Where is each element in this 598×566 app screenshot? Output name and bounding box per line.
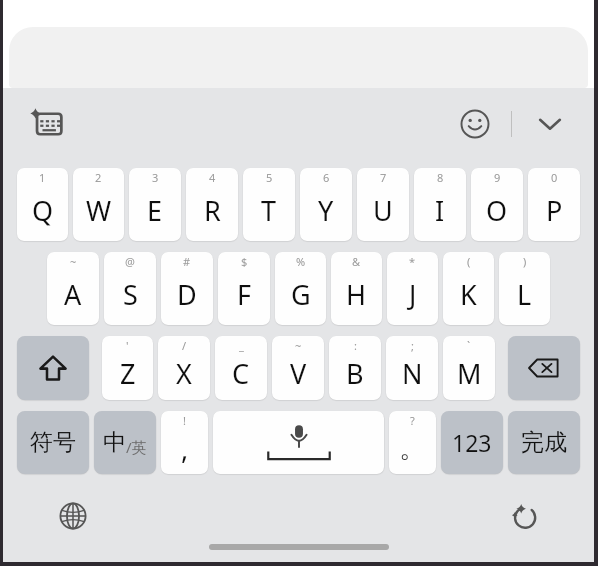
- staticText: H: [346, 276, 367, 313]
- button[interactable]: 2: [73, 168, 124, 241]
- button[interactable]: #: [161, 252, 213, 325]
- button[interactable]: @: [104, 252, 156, 325]
- staticText: *: [409, 254, 416, 269]
- staticText: ?: [410, 413, 415, 428]
- staticText: Z: [120, 355, 136, 392]
- staticText: I: [435, 192, 445, 229]
- staticText: ': [126, 338, 129, 353]
- button[interactable]: 6: [300, 168, 352, 241]
- button[interactable]: 9: [471, 168, 523, 241]
- staticText: !: [183, 413, 186, 428]
- staticText: #: [183, 254, 191, 269]
- button[interactable]: %: [275, 252, 326, 325]
- staticText: B: [346, 355, 364, 392]
- button[interactable]: Emoji: [453, 102, 497, 146]
- staticText: /: [182, 338, 187, 353]
- staticText: %: [296, 254, 306, 269]
- button[interactable]: _: [215, 336, 267, 400]
- staticText: W: [86, 192, 112, 229]
- staticText: :: [354, 338, 357, 353]
- staticText: ,: [181, 430, 189, 467]
- button[interactable]: :: [329, 336, 381, 400]
- button[interactable]: $: [218, 252, 270, 325]
- staticText: C: [232, 355, 250, 392]
- staticText: 4: [209, 170, 216, 185]
- staticText: @: [125, 254, 135, 269]
- button[interactable]: Shift: [17, 336, 89, 400]
- staticText: R: [204, 192, 221, 229]
- button[interactable]: 1: [17, 168, 68, 241]
- button[interactable]: ': [102, 336, 153, 400]
- button[interactable]: Space: [213, 411, 384, 474]
- button[interactable]: Done: [508, 411, 580, 474]
- staticText: E: [147, 192, 163, 229]
- staticText: F: [237, 276, 252, 313]
- staticText: X: [176, 355, 192, 392]
- staticText: (: [467, 254, 471, 269]
- button[interactable]: Numbers: [441, 411, 503, 474]
- staticText: 2: [95, 170, 102, 185]
- button[interactable]: Hide keyboard: [528, 102, 572, 146]
- staticText: U: [373, 192, 393, 229]
- button[interactable]: AI keyboard: [23, 101, 69, 147]
- staticText: S: [123, 276, 138, 313]
- staticText: 符号: [30, 428, 76, 457]
- staticText: 。: [399, 431, 426, 465]
- staticText: A: [64, 276, 82, 313]
- staticText: 5: [266, 170, 273, 185]
- staticText: 9: [494, 170, 501, 185]
- staticText: 中: [103, 428, 126, 457]
- staticText: /英: [126, 437, 147, 457]
- staticText: V: [290, 355, 307, 392]
- staticText: $: [241, 254, 248, 269]
- button[interactable]: `: [443, 336, 495, 400]
- staticText: P: [546, 192, 563, 229]
- button[interactable]: &: [331, 252, 382, 325]
- button[interactable]: /: [158, 336, 210, 400]
- staticText: 7: [380, 170, 387, 185]
- button[interactable]: 3: [129, 168, 181, 241]
- staticText: 1: [39, 170, 46, 185]
- staticText: 完成: [521, 428, 567, 457]
- button[interactable]: *: [387, 252, 438, 325]
- staticText: 6: [323, 170, 330, 185]
- staticText: ;: [411, 338, 414, 353]
- button[interactable]: ;: [386, 336, 438, 400]
- button[interactable]: 0: [528, 168, 580, 241]
- button[interactable]: Change language: [53, 496, 93, 536]
- button[interactable]: ?: [389, 411, 436, 474]
- staticText: `: [467, 338, 471, 353]
- staticText: G: [291, 276, 311, 313]
- staticText: J: [409, 276, 417, 313]
- staticText: Q: [32, 192, 54, 229]
- staticText: Y: [318, 192, 334, 229]
- staticText: 8: [437, 170, 444, 185]
- button[interactable]: ): [499, 252, 550, 325]
- button[interactable]: 5: [243, 168, 295, 241]
- staticText: 123: [452, 427, 492, 458]
- staticText: M: [457, 355, 482, 392]
- staticText: 3: [152, 170, 159, 185]
- staticText: ~: [70, 254, 77, 269]
- staticText: ): [523, 254, 527, 269]
- button[interactable]: !: [161, 411, 208, 474]
- button[interactable]: Backspace: [508, 336, 580, 400]
- button[interactable]: AI assist: [504, 496, 544, 536]
- button[interactable]: Chinese English toggle: [94, 411, 156, 474]
- staticText: &: [352, 254, 361, 269]
- button[interactable]: 8: [414, 168, 466, 241]
- staticText: 0: [551, 170, 558, 185]
- button[interactable]: ~: [47, 252, 99, 325]
- button[interactable]: Symbols: [17, 411, 89, 474]
- button[interactable]: 7: [357, 168, 409, 241]
- staticText: T: [261, 192, 277, 229]
- button[interactable]: ~: [272, 336, 324, 400]
- button[interactable]: 4: [186, 168, 238, 241]
- staticText: ~: [295, 338, 302, 353]
- button[interactable]: (: [443, 252, 494, 325]
- staticText: _: [239, 338, 244, 353]
- staticText: L: [517, 276, 532, 313]
- staticText: K: [460, 276, 477, 313]
- staticText: N: [402, 355, 423, 392]
